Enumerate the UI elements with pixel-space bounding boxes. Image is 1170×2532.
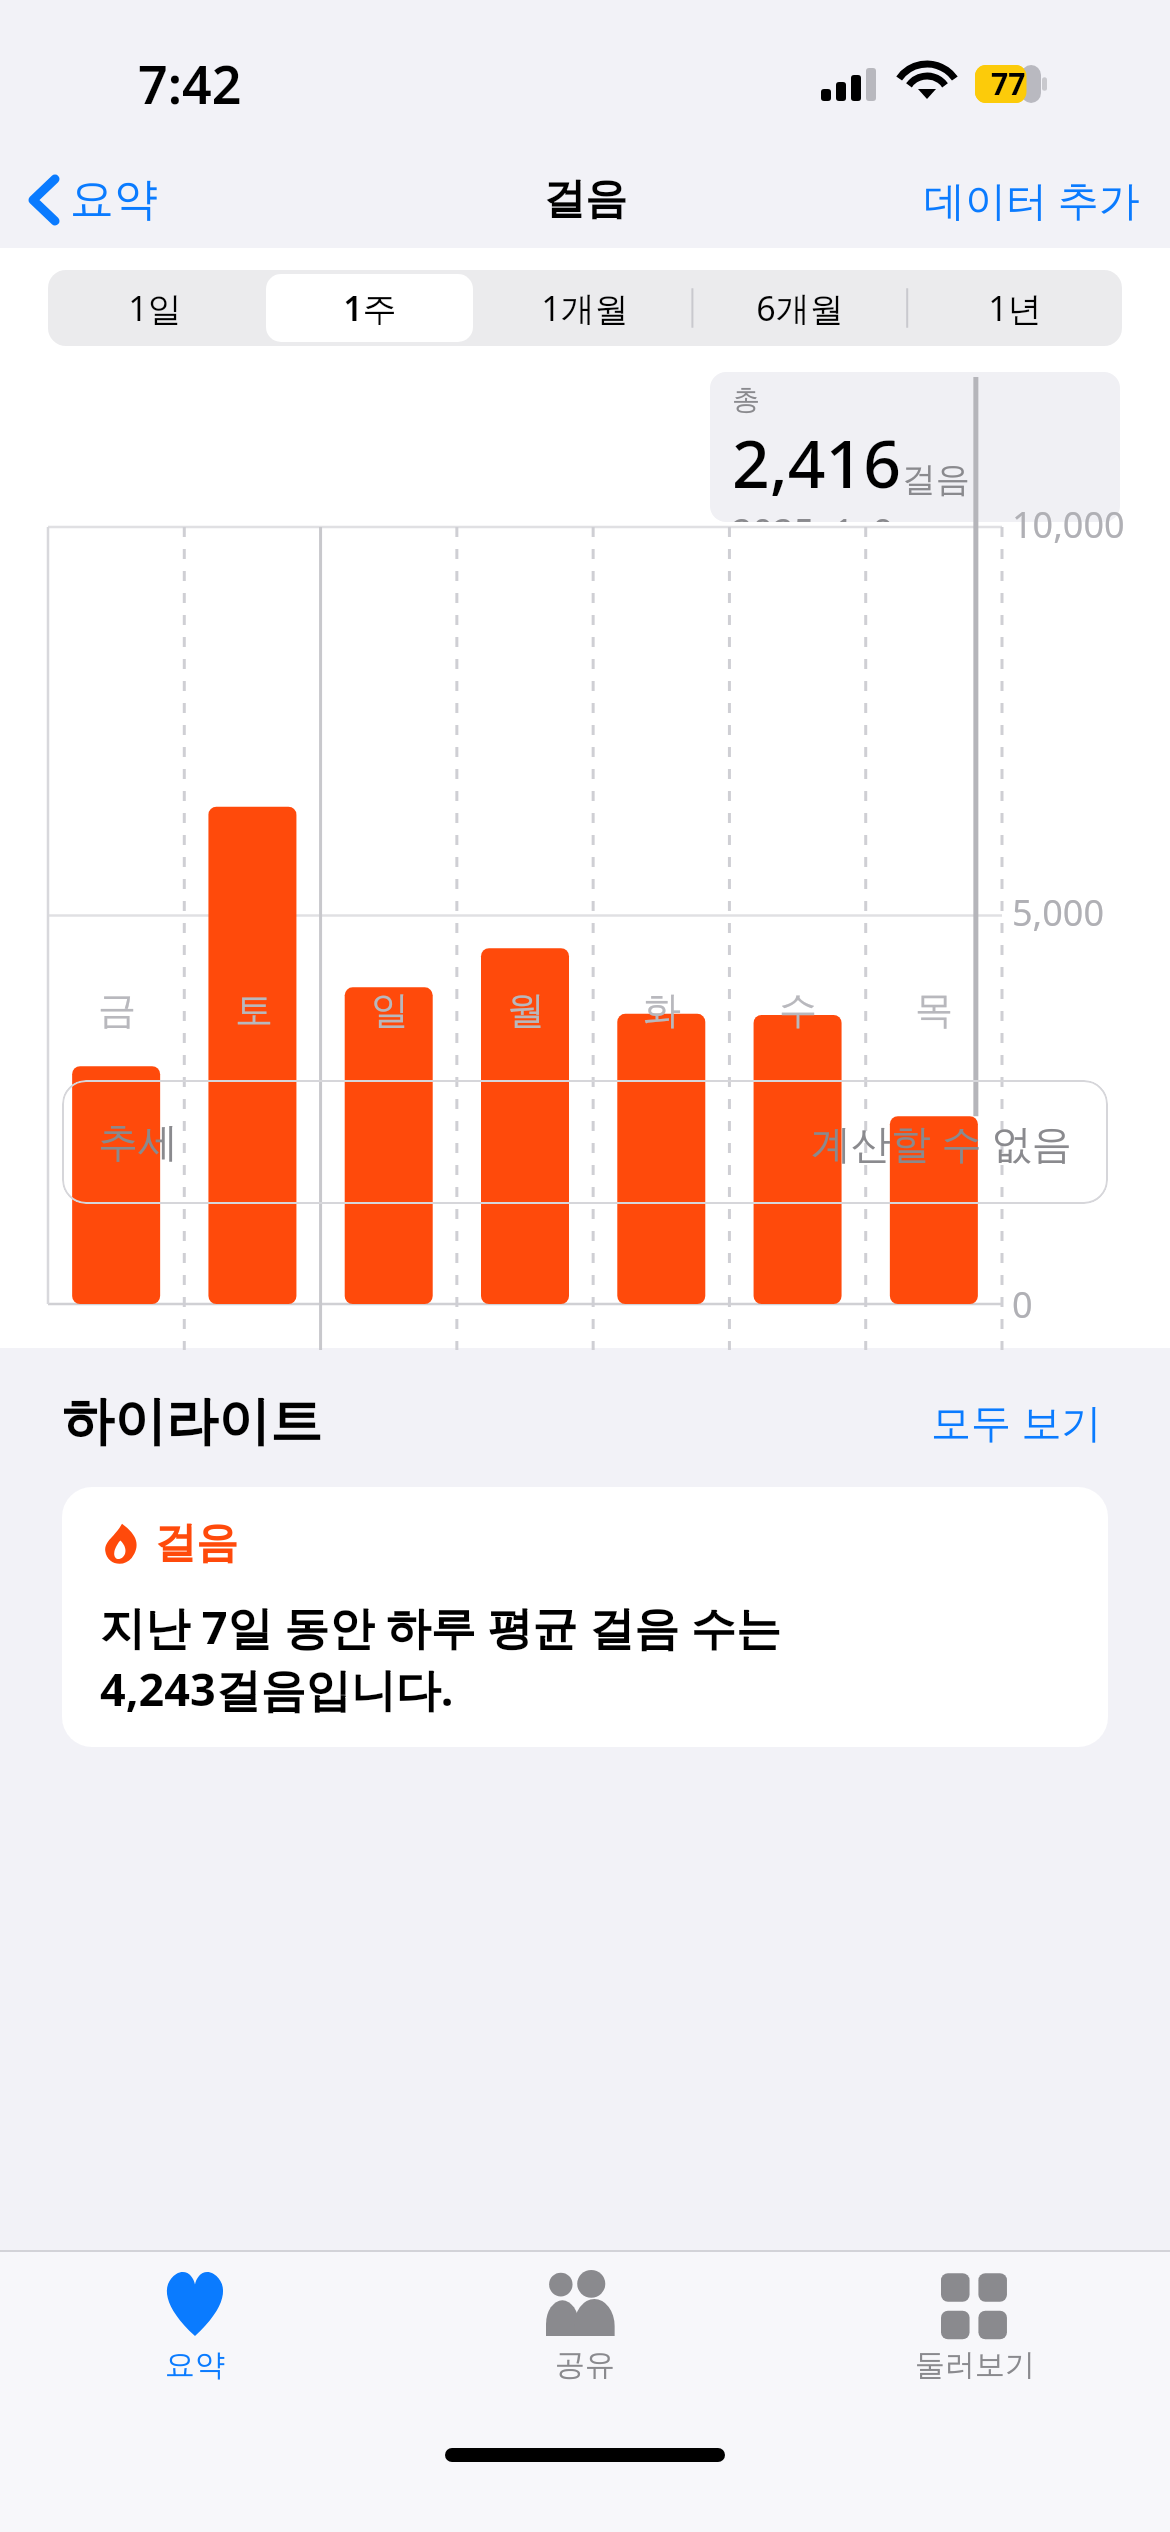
button[interactable]: 둘러보기	[780, 2252, 1170, 2422]
staticText: 데이터 추가	[924, 171, 1140, 227]
button[interactable]: 모두 보기	[925, 1388, 1108, 1455]
staticText: 요약	[70, 172, 158, 227]
staticText: 추세	[98, 1117, 178, 1167]
button[interactable]: 6개월	[696, 274, 903, 342]
staticText: 2,416	[732, 417, 902, 507]
button[interactable]: 요약	[0, 168, 168, 231]
button[interactable]: 1개월	[481, 274, 688, 342]
staticText: 77	[991, 63, 1026, 104]
staticText: 금	[98, 986, 136, 1034]
staticText: 지난 7일 동안 하루 평균 걸음 수는 4,243걸음입니다.	[100, 1596, 781, 1719]
staticText: 하이라이트	[62, 1389, 322, 1455]
staticText: 7:42	[138, 48, 242, 119]
staticText: 0	[1012, 1280, 1033, 1329]
staticText: 목	[915, 986, 953, 1034]
button[interactable]: 1일	[52, 274, 258, 342]
staticText: 총	[732, 382, 760, 417]
other: 둘러보기	[941, 2270, 1009, 2336]
staticText: 모두 보기	[931, 1394, 1102, 1449]
staticText: 6개월	[756, 285, 844, 331]
staticText: 걸음	[543, 173, 627, 226]
button[interactable]: 총	[710, 372, 1120, 522]
staticText: 둘러보기	[915, 2346, 1035, 2384]
button[interactable]: 데이터 추가	[914, 165, 1170, 233]
staticText: 일	[371, 986, 409, 1034]
staticText: 10,000	[1012, 500, 1125, 549]
staticText: 공유	[555, 2346, 615, 2384]
staticText: 화	[643, 986, 681, 1034]
staticText: 요약	[165, 2346, 225, 2384]
button[interactable]: 추세	[62, 1080, 1108, 1204]
staticText: 1년	[988, 285, 1042, 331]
button[interactable]: 요약	[0, 2252, 390, 2422]
staticText: 1주	[343, 285, 397, 331]
button[interactable]: 1년	[911, 274, 1118, 342]
button[interactable]: 1주	[266, 274, 473, 342]
staticText: 걸음	[902, 458, 970, 501]
staticText: 5,000	[1012, 888, 1105, 937]
staticText: 1일	[128, 285, 182, 331]
other: 공유	[546, 2270, 624, 2336]
staticText: 수	[779, 986, 817, 1034]
staticText: 월	[507, 986, 545, 1034]
staticText: 1개월	[541, 285, 629, 331]
other: 요약	[159, 2270, 231, 2336]
staticText: 토	[235, 986, 273, 1034]
button[interactable]: 공유	[390, 2252, 780, 2422]
staticText: 계산할 수 없음	[811, 1115, 1072, 1170]
button[interactable]: 걸음	[62, 1487, 1108, 1747]
staticText: 걸음	[154, 1517, 238, 1570]
staticText: 2025. 1. 9.	[732, 507, 904, 522]
